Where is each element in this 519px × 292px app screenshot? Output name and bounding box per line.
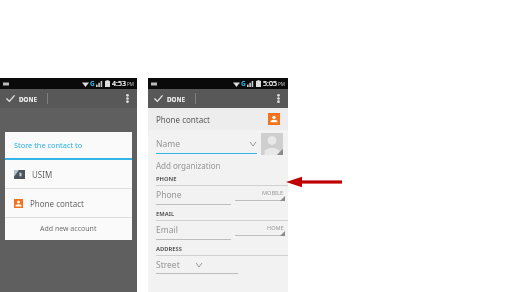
staticText: PM: [127, 81, 134, 87]
staticText: DONE: [19, 95, 37, 103]
staticText: Add new account: [40, 224, 97, 234]
staticText: G: [90, 79, 95, 88]
button[interactable]: USIM: [5, 160, 132, 188]
staticText: Email: [156, 224, 178, 236]
staticText: Phone: [156, 189, 182, 201]
button[interactable]: Contact photo: [261, 133, 283, 155]
button[interactable]: DONE: [0, 89, 43, 108]
staticText: Name: [156, 138, 180, 150]
staticText: DONE: [167, 95, 185, 103]
staticText: PHONE: [156, 175, 177, 183]
staticText: EMAIL: [156, 210, 175, 218]
staticText: 5:05: [263, 79, 277, 89]
button[interactable]: Phone: [148, 186, 288, 208]
button[interactable]: DONE: [148, 89, 191, 108]
button[interactable]: Add organization: [148, 158, 288, 173]
button[interactable]: Email: [148, 221, 288, 243]
staticText: USIM: [32, 169, 53, 180]
staticText: Street: [156, 259, 180, 271]
staticText: MOBILE: [262, 189, 284, 197]
button[interactable]: Street: [148, 256, 288, 276]
staticText: ADDRESS: [156, 245, 182, 253]
staticText: 4:53: [112, 79, 126, 89]
button[interactable]: Add new account: [5, 218, 132, 240]
staticText: HOME: [267, 224, 284, 232]
button[interactable]: Phone contact: [5, 189, 132, 217]
staticText: Phone contact: [156, 114, 210, 125]
staticText: PM: [278, 81, 285, 87]
staticText: Store the contact to: [14, 140, 83, 150]
staticText: G: [241, 79, 246, 88]
staticText: Phone contact: [30, 198, 84, 209]
button[interactable]: More options: [269, 89, 288, 108]
button[interactable]: Phone contact: [148, 108, 288, 130]
button[interactable]: More options: [118, 89, 137, 108]
staticText: Add organization: [156, 160, 221, 171]
